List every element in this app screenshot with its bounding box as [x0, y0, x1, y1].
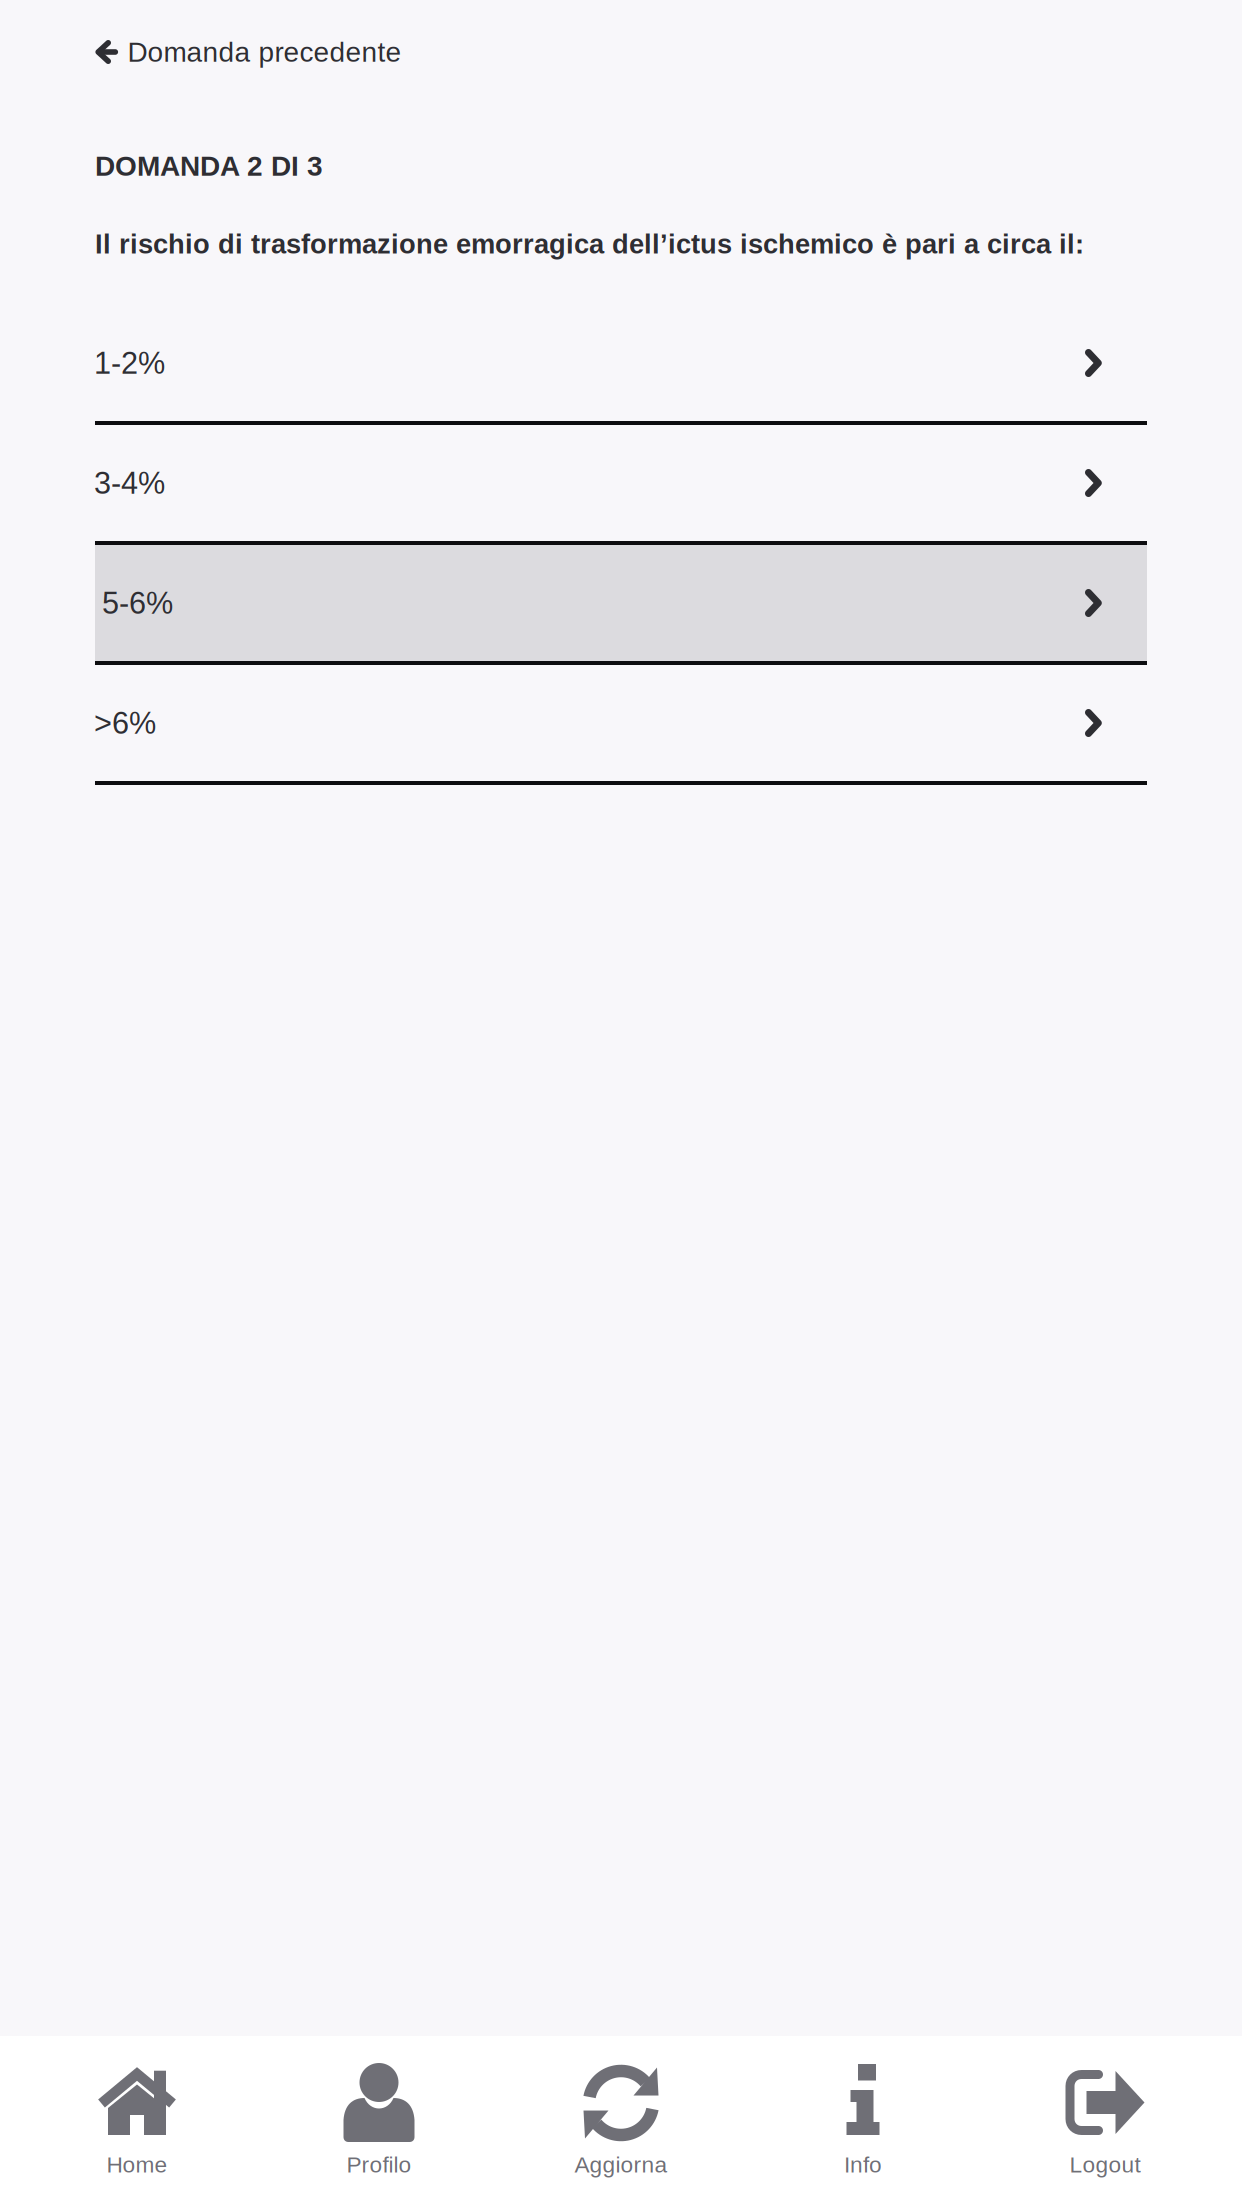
staticText: Home: [106, 2152, 167, 2177]
staticText: Profilo: [346, 2152, 411, 2177]
staticText: Domanda precedente: [127, 36, 401, 68]
button[interactable]: Home: [16, 2036, 258, 2208]
button[interactable]: 3-4%: [95, 425, 1147, 545]
button[interactable]: Logout: [984, 2036, 1226, 2208]
staticText: Il rischio di trasformazione emorragica …: [95, 229, 1084, 259]
button[interactable]: Aggiorna: [500, 2036, 742, 2208]
button[interactable]: Domanda precedente: [0, 0, 1242, 104]
staticText: 3-4%: [94, 466, 165, 500]
staticText: Info: [844, 2152, 882, 2177]
button[interactable]: 5-6%: [95, 545, 1147, 665]
button[interactable]: Info: [742, 2036, 984, 2208]
button[interactable]: Profilo: [258, 2036, 500, 2208]
staticText: Logout: [1069, 2152, 1140, 2177]
staticText: DOMANDA 2 DI 3: [95, 150, 323, 182]
staticText: >6%: [94, 706, 156, 740]
staticText: Aggiorna: [574, 2152, 667, 2177]
button[interactable]: >6%: [95, 665, 1147, 785]
button[interactable]: 1-2%: [95, 305, 1147, 425]
staticText: 1-2%: [94, 346, 165, 380]
staticText: 5-6%: [102, 586, 173, 620]
